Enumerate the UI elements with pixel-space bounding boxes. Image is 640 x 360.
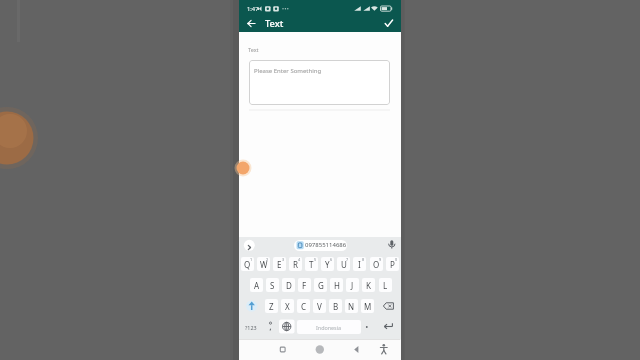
staticText: S [270,280,275,291]
staticText: V [317,301,322,312]
staticText: A [254,280,260,291]
button[interactable]: Q [241,257,254,271]
staticText: ?123 [245,324,257,331]
staticText: 4 [298,257,301,262]
staticText: N [348,301,355,312]
button[interactable]: Text [265,17,284,30]
staticText: 9 [379,257,382,262]
button[interactable]: D [282,278,295,292]
button[interactable]: E [273,257,286,271]
staticText: 0 [395,257,398,262]
button[interactable]: C [297,299,310,313]
staticText: I [358,259,361,270]
button[interactable]: I [353,257,366,271]
staticText: Please Enter Something [254,67,322,75]
button[interactable]: M [361,299,374,313]
button[interactable]: V [313,299,326,313]
staticText: Z [269,301,274,312]
button[interactable]: L [379,278,392,292]
button[interactable] [294,240,347,251]
staticText: L [383,280,388,291]
button[interactable] [245,15,259,31]
button[interactable]: U [337,257,350,271]
staticText: 2 [266,257,269,262]
button[interactable]: ?123 [242,320,259,334]
staticText: 6 [330,257,333,262]
button[interactable]: B [329,299,342,313]
staticText: K [366,280,371,291]
staticText: W [260,259,268,270]
staticText: 7 [346,257,349,262]
staticText: M [364,301,372,312]
staticText: Y [325,259,330,270]
button[interactable] [347,341,362,358]
button[interactable]: J [346,278,359,292]
button[interactable]: A [250,278,263,292]
staticText: J [351,280,354,291]
staticText: B [333,301,339,312]
button[interactable]: O [370,257,383,271]
button[interactable] [312,341,327,358]
button[interactable]: Indonesia [297,320,361,334]
button[interactable] [376,341,391,358]
button[interactable]: G [314,278,327,292]
staticText: 1 [250,257,253,262]
staticText: G [318,280,324,291]
button[interactable]: X [281,299,294,313]
staticText: 1:47 [247,5,259,13]
staticText: R [293,259,298,270]
button[interactable]: Z [265,299,278,313]
button[interactable]: W [257,257,270,271]
staticText: P [390,259,395,270]
staticText: T [309,259,314,270]
staticText: F [302,280,307,291]
staticText: C [301,301,307,312]
staticText: E [277,259,282,270]
button[interactable]: N [345,299,358,313]
button[interactable]: R [289,257,302,271]
staticText: O [373,259,380,270]
staticText: U [341,259,347,270]
staticText: 5 [314,257,317,262]
button[interactable]: H [330,278,343,292]
button[interactable]: T [305,257,318,271]
button[interactable]: P [386,257,399,271]
staticText: 097855114686 [305,241,347,249]
staticText: 3 [282,257,285,262]
staticText: 8 [362,257,365,262]
button[interactable]: K [362,278,375,292]
staticText: H [334,280,340,291]
button[interactable]: S [266,278,279,292]
staticText: D [286,280,292,291]
button[interactable] [249,60,390,105]
staticText: X [285,301,290,312]
staticText: Q [244,259,251,270]
button[interactable]: Y [321,257,334,271]
button[interactable] [381,15,397,31]
staticText: Indonesia [316,324,342,331]
staticText: Text [248,46,259,53]
button[interactable] [275,341,290,358]
button[interactable]: F [298,278,311,292]
